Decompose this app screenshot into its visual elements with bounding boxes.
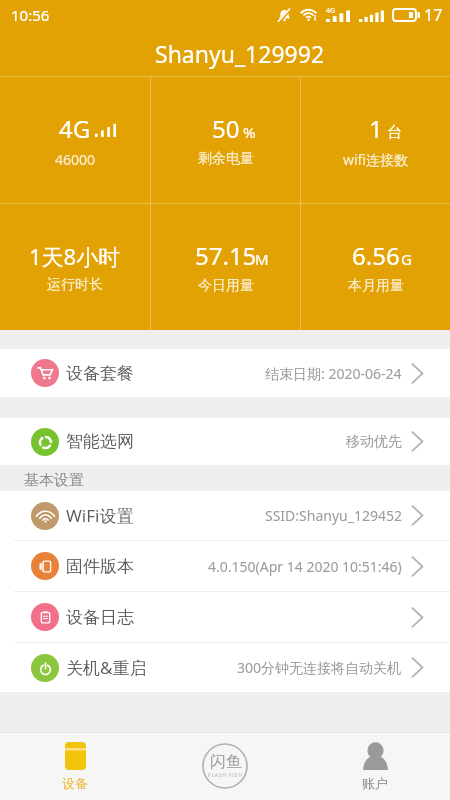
staticText: 账户 xyxy=(362,775,388,791)
staticText: FLASH FISH xyxy=(208,772,243,779)
staticText: 10:56 xyxy=(11,5,50,25)
staticText: 1天8小时 xyxy=(29,241,121,271)
staticText: 6.56 xyxy=(352,239,400,272)
staticText: 剩余电量 xyxy=(198,150,254,168)
staticText: 结束日期: 2020-06-24 xyxy=(265,364,402,383)
button[interactable]: 智能选网 xyxy=(0,418,450,465)
staticText: 设备 xyxy=(62,775,88,791)
staticText: G xyxy=(401,249,412,269)
staticText: 设备日志 xyxy=(66,607,134,628)
staticText: 4G xyxy=(59,112,91,145)
staticText: 57.15 xyxy=(195,239,257,272)
staticText: 1 xyxy=(369,112,383,145)
button[interactable]: 固件版本 xyxy=(0,541,450,591)
staticText: 今日用量 xyxy=(198,277,254,295)
staticText: 基本设置 xyxy=(24,471,84,490)
staticText: 固件版本 xyxy=(66,556,134,577)
staticText: 闪鱼 xyxy=(210,752,242,772)
staticText: SSID:Shanyu_129452 xyxy=(265,506,402,525)
staticText: 本月用量 xyxy=(348,277,404,295)
button[interactable]: 关机&重启 xyxy=(0,643,450,692)
staticText: WiFi设置 xyxy=(66,504,134,527)
staticText: 智能选网 xyxy=(66,431,134,452)
staticText: 设备套餐 xyxy=(66,363,134,384)
button[interactable]: 设备 xyxy=(0,732,150,800)
staticText: M xyxy=(255,249,269,269)
staticText: 台 xyxy=(387,123,402,142)
button[interactable]: 设备套餐 xyxy=(0,349,450,397)
staticText: 4.0.150(Apr 14 2020 10:51:46) xyxy=(208,557,402,576)
staticText: wifi连接数 xyxy=(343,150,409,169)
staticText: 50 xyxy=(212,112,240,145)
staticText: 运行时长 xyxy=(47,276,103,294)
staticText: Shanyu_129992 xyxy=(155,38,325,69)
staticText: 46000 xyxy=(55,150,96,169)
button[interactable]: 账户 xyxy=(300,732,450,800)
staticText: 移动优先 xyxy=(346,433,402,451)
staticText: % xyxy=(243,122,256,142)
staticText: 关机&重启 xyxy=(66,656,147,679)
staticText: 17 xyxy=(424,4,443,26)
button[interactable]: Flash Fish xyxy=(150,732,300,800)
button[interactable]: 设备日志 xyxy=(0,592,450,642)
staticText: 300分钟无连接将自动关机 xyxy=(237,658,402,677)
staticText: 4G xyxy=(326,6,336,16)
button[interactable]: WiFi设置 xyxy=(0,491,450,540)
